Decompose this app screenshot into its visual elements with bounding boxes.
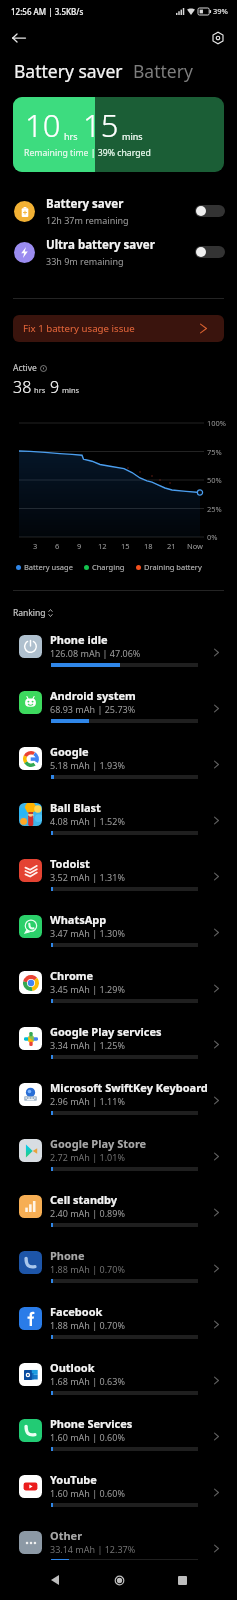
- staticText: mins: [122, 130, 143, 142]
- button[interactable]: Ball Blast: [0, 796, 237, 852]
- staticText: 1.68 mAh | 0.63%: [50, 1375, 125, 1387]
- staticText: Cell standby: [50, 1192, 118, 1207]
- button[interactable]: Fix 1 battery usage issue: [13, 315, 224, 342]
- button[interactable]: Google Play Store: [0, 1132, 237, 1188]
- staticText: hrs: [34, 385, 46, 395]
- staticText: 50%: [207, 475, 222, 485]
- button[interactable]: Microsoft SwiftKey Keyboard: [0, 1076, 237, 1132]
- button[interactable]: Battery saver: [0, 190, 237, 232]
- staticText: 75%: [207, 447, 222, 457]
- staticText: 2.40 mAh | 0.89%: [50, 1207, 125, 1219]
- staticText: Ultra battery saver: [46, 237, 155, 253]
- button[interactable]: Settings: [206, 26, 230, 50]
- button[interactable]: Phone Services: [0, 1412, 237, 1468]
- staticText: Phone Services: [50, 1416, 133, 1431]
- staticText: Now: [187, 541, 203, 551]
- staticText: Google: [50, 744, 89, 759]
- button[interactable]: Other: [0, 1524, 237, 1580]
- staticText: Outlook: [50, 1360, 95, 1375]
- button[interactable]: Ranking: [13, 606, 53, 620]
- staticText: 68.93 mAh | 25.73%: [50, 703, 136, 715]
- staticText: Active: [13, 362, 37, 374]
- staticText: 12: [98, 541, 107, 551]
- button[interactable]: Recents: [169, 1567, 195, 1593]
- button[interactable]: Google Play services: [0, 1020, 237, 1076]
- staticText: Other: [50, 1528, 83, 1543]
- button[interactable]: Ultra battery saver: [0, 231, 237, 273]
- staticText: Phone: [50, 1248, 85, 1263]
- staticText: Google Play services: [50, 1024, 162, 1039]
- button[interactable]: Outlook: [0, 1356, 237, 1412]
- staticText: 126.08 mAh | 47.06%: [50, 647, 141, 659]
- staticText: 2.72 mAh | 1.01%: [50, 1151, 125, 1163]
- staticText: Google Play Store: [50, 1136, 147, 1151]
- staticText: 1.88 mAh | 0.70%: [50, 1319, 125, 1331]
- staticText: 3.47 mAh | 1.30%: [50, 927, 125, 939]
- staticText: 100%: [207, 418, 227, 428]
- button[interactable]: Google: [0, 740, 237, 796]
- staticText: 38: [13, 376, 32, 398]
- button[interactable]: Back: [42, 1567, 68, 1593]
- staticText: hrs: [64, 130, 78, 142]
- staticText: Microsoft SwiftKey Keyboard: [50, 1080, 208, 1095]
- staticText: 18: [144, 541, 153, 551]
- staticText: 2.96 mAh | 1.11%: [50, 1095, 125, 1107]
- button[interactable]: Android system: [0, 684, 237, 740]
- button[interactable]: Phone idle: [0, 628, 237, 684]
- staticText: 3.34 mAh | 1.25%: [50, 1039, 125, 1051]
- staticText: 4.08 mAh | 1.52%: [50, 815, 125, 827]
- staticText: 1.60 mAh | 0.60%: [50, 1431, 125, 1443]
- button[interactable]: Battery saver toggle: [195, 205, 225, 217]
- staticText: 1.60 mAh | 0.60%: [50, 1487, 125, 1499]
- button[interactable]: Back: [7, 26, 31, 50]
- staticText: Battery saver: [14, 59, 123, 83]
- staticText: 9: [77, 541, 82, 551]
- staticText: Battery saver: [46, 196, 124, 212]
- button[interactable]: WhatsApp: [0, 908, 237, 964]
- staticText: 21: [167, 541, 176, 551]
- staticText: 0%: [207, 532, 218, 542]
- staticText: 39%: [213, 6, 228, 16]
- staticText: Charging: [92, 562, 125, 572]
- staticText: YouTube: [50, 1472, 97, 1487]
- button[interactable]: Todoist: [0, 852, 237, 908]
- button[interactable]: Cell standby: [0, 1188, 237, 1244]
- staticText: 1.88 mAh | 0.70%: [50, 1263, 125, 1275]
- button[interactable]: YouTube: [0, 1468, 237, 1524]
- staticText: Phone idle: [50, 632, 108, 647]
- staticText: Chrome: [50, 968, 94, 983]
- staticText: Remaining time | 39% charged: [24, 147, 151, 159]
- button[interactable]: Ultra battery saver toggle: [195, 246, 225, 258]
- staticText: 3.45 mAh | 1.29%: [50, 983, 125, 995]
- staticText: 6: [55, 541, 60, 551]
- staticText: Facebook: [50, 1304, 103, 1319]
- staticText: 9: [50, 376, 60, 398]
- staticText: 12h 37m remaining: [46, 214, 129, 226]
- button[interactable]: Phone: [0, 1244, 237, 1300]
- staticText: 15: [83, 104, 119, 146]
- button[interactable]: Chrome: [0, 964, 237, 1020]
- staticText: Todoist: [50, 856, 90, 871]
- staticText: 10: [25, 104, 61, 146]
- staticText: Fix 1 battery usage issue: [23, 322, 200, 335]
- staticText: Android system: [50, 688, 136, 703]
- staticText: 3: [33, 541, 38, 551]
- staticText: 15: [121, 541, 130, 551]
- staticText: Battery: [133, 59, 193, 83]
- staticText: Draining battery: [144, 562, 202, 572]
- staticText: Battery usage: [24, 562, 73, 572]
- button[interactable]: Home: [106, 1567, 132, 1593]
- staticText: 33.14 mAh | 12.37%: [50, 1543, 136, 1555]
- staticText: 12:56 AM | 3.5KB/s: [11, 6, 84, 17]
- staticText: 25%: [207, 504, 222, 514]
- staticText: 3.52 mAh | 1.31%: [50, 871, 125, 883]
- staticText: mins: [62, 385, 80, 395]
- staticText: Ball Blast: [50, 800, 101, 815]
- staticText: 5.18 mAh | 1.93%: [50, 759, 125, 771]
- staticText: 33h 9m remaining: [46, 255, 124, 267]
- staticText: WhatsApp: [50, 912, 107, 927]
- button[interactable]: Facebook: [0, 1300, 237, 1356]
- button[interactable]: 10: [13, 97, 224, 172]
- staticText: Ranking: [13, 607, 46, 619]
